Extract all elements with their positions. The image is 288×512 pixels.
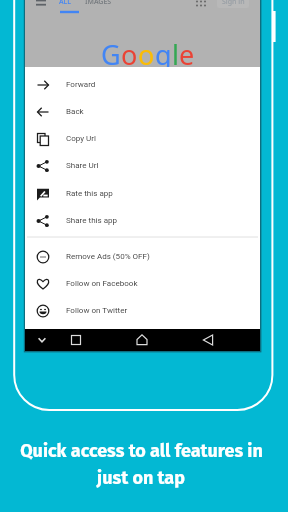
button[interactable]: Forward: [25, 71, 260, 98]
button[interactable]: Back: [191, 329, 257, 351]
button[interactable]: Sign in: [217, 0, 249, 8]
staticText: o: [138, 36, 155, 73]
button[interactable]: Share Url: [25, 152, 260, 179]
staticText: Sign in: [222, 0, 245, 7]
staticText: Share Url: [66, 161, 99, 170]
staticText: Forward: [66, 80, 96, 89]
staticText: Remove Ads (50% OFF): [66, 252, 150, 261]
button[interactable]: Follow on Facebook: [25, 270, 260, 297]
staticText: Follow on Facebook: [66, 279, 138, 288]
staticText: e: [179, 36, 195, 73]
staticText: Share this app: [66, 216, 118, 225]
staticText: Back: [66, 107, 84, 116]
button[interactable]: Back: [25, 98, 260, 125]
staticText: IMAGES: [85, 0, 112, 7]
staticText: Quick access to all features in: [20, 440, 263, 462]
button[interactable]: Recents: [59, 329, 125, 351]
button[interactable]: Remove Ads (50% OFF): [25, 243, 260, 270]
staticText: just on tap: [97, 467, 185, 489]
staticText: G: [101, 36, 121, 73]
staticText: Follow on Twitter: [66, 306, 128, 315]
button[interactable]: Copy Url: [25, 125, 260, 152]
button[interactable]: Share this app: [25, 207, 260, 234]
staticText: ALL: [59, 0, 72, 7]
button[interactable]: Home: [125, 329, 191, 351]
staticText: g: [155, 36, 172, 73]
button[interactable]: Follow on Twitter: [25, 297, 260, 324]
button[interactable]: Hide keyboard: [25, 329, 59, 351]
button[interactable]: Rate this app: [25, 180, 260, 207]
staticText: l: [172, 36, 179, 73]
staticText: o: [121, 36, 138, 73]
staticText: Copy Url: [66, 134, 97, 143]
staticText: Rate this app: [66, 189, 113, 198]
